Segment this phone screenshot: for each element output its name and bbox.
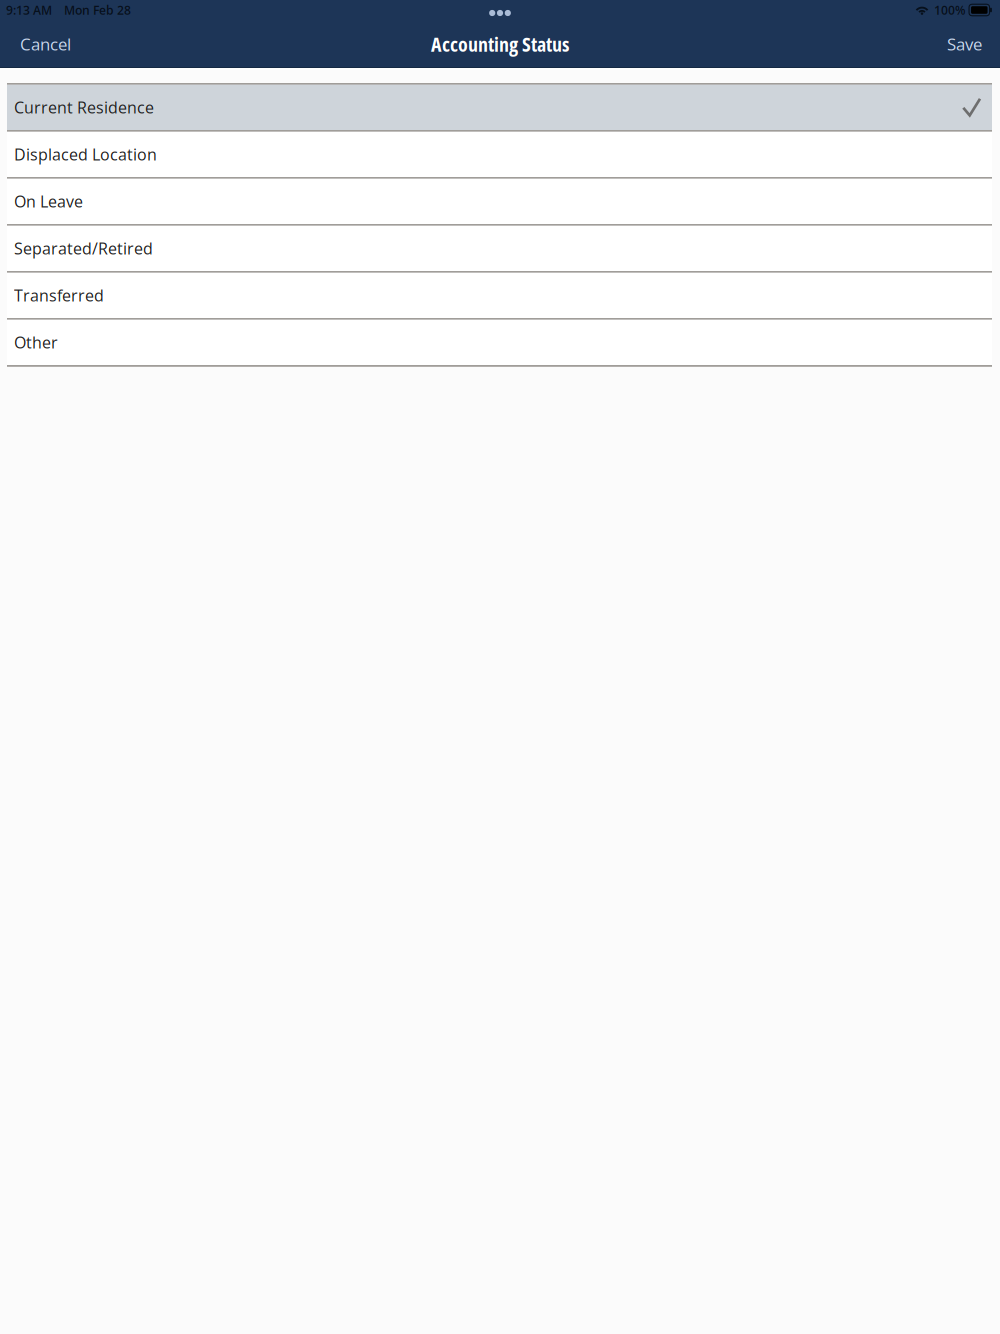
staticText: Save [947,33,982,55]
staticText: 9:13 AM [6,2,52,18]
staticText: Transferred [14,284,104,306]
button[interactable]: Separated/Retired [7,226,992,271]
button[interactable]: Save [929,20,1000,68]
staticText: Mon Feb 28 [64,2,131,18]
staticText: Separated/Retired [14,237,153,259]
staticText: Current Residence [14,96,154,118]
button[interactable]: On Leave [7,179,992,224]
staticText: Cancel [20,33,71,55]
staticText: Displaced Location [14,143,157,165]
button[interactable]: Current Residence [7,85,992,130]
button[interactable]: Cancel [0,20,89,68]
staticText: Accounting Status [431,30,569,58]
staticText: On Leave [14,190,83,212]
staticText: 100% [934,2,965,18]
button[interactable]: Transferred [7,273,992,318]
staticText: Other [14,331,58,353]
button[interactable]: Displaced Location [7,132,992,177]
button[interactable]: Other [7,320,992,365]
